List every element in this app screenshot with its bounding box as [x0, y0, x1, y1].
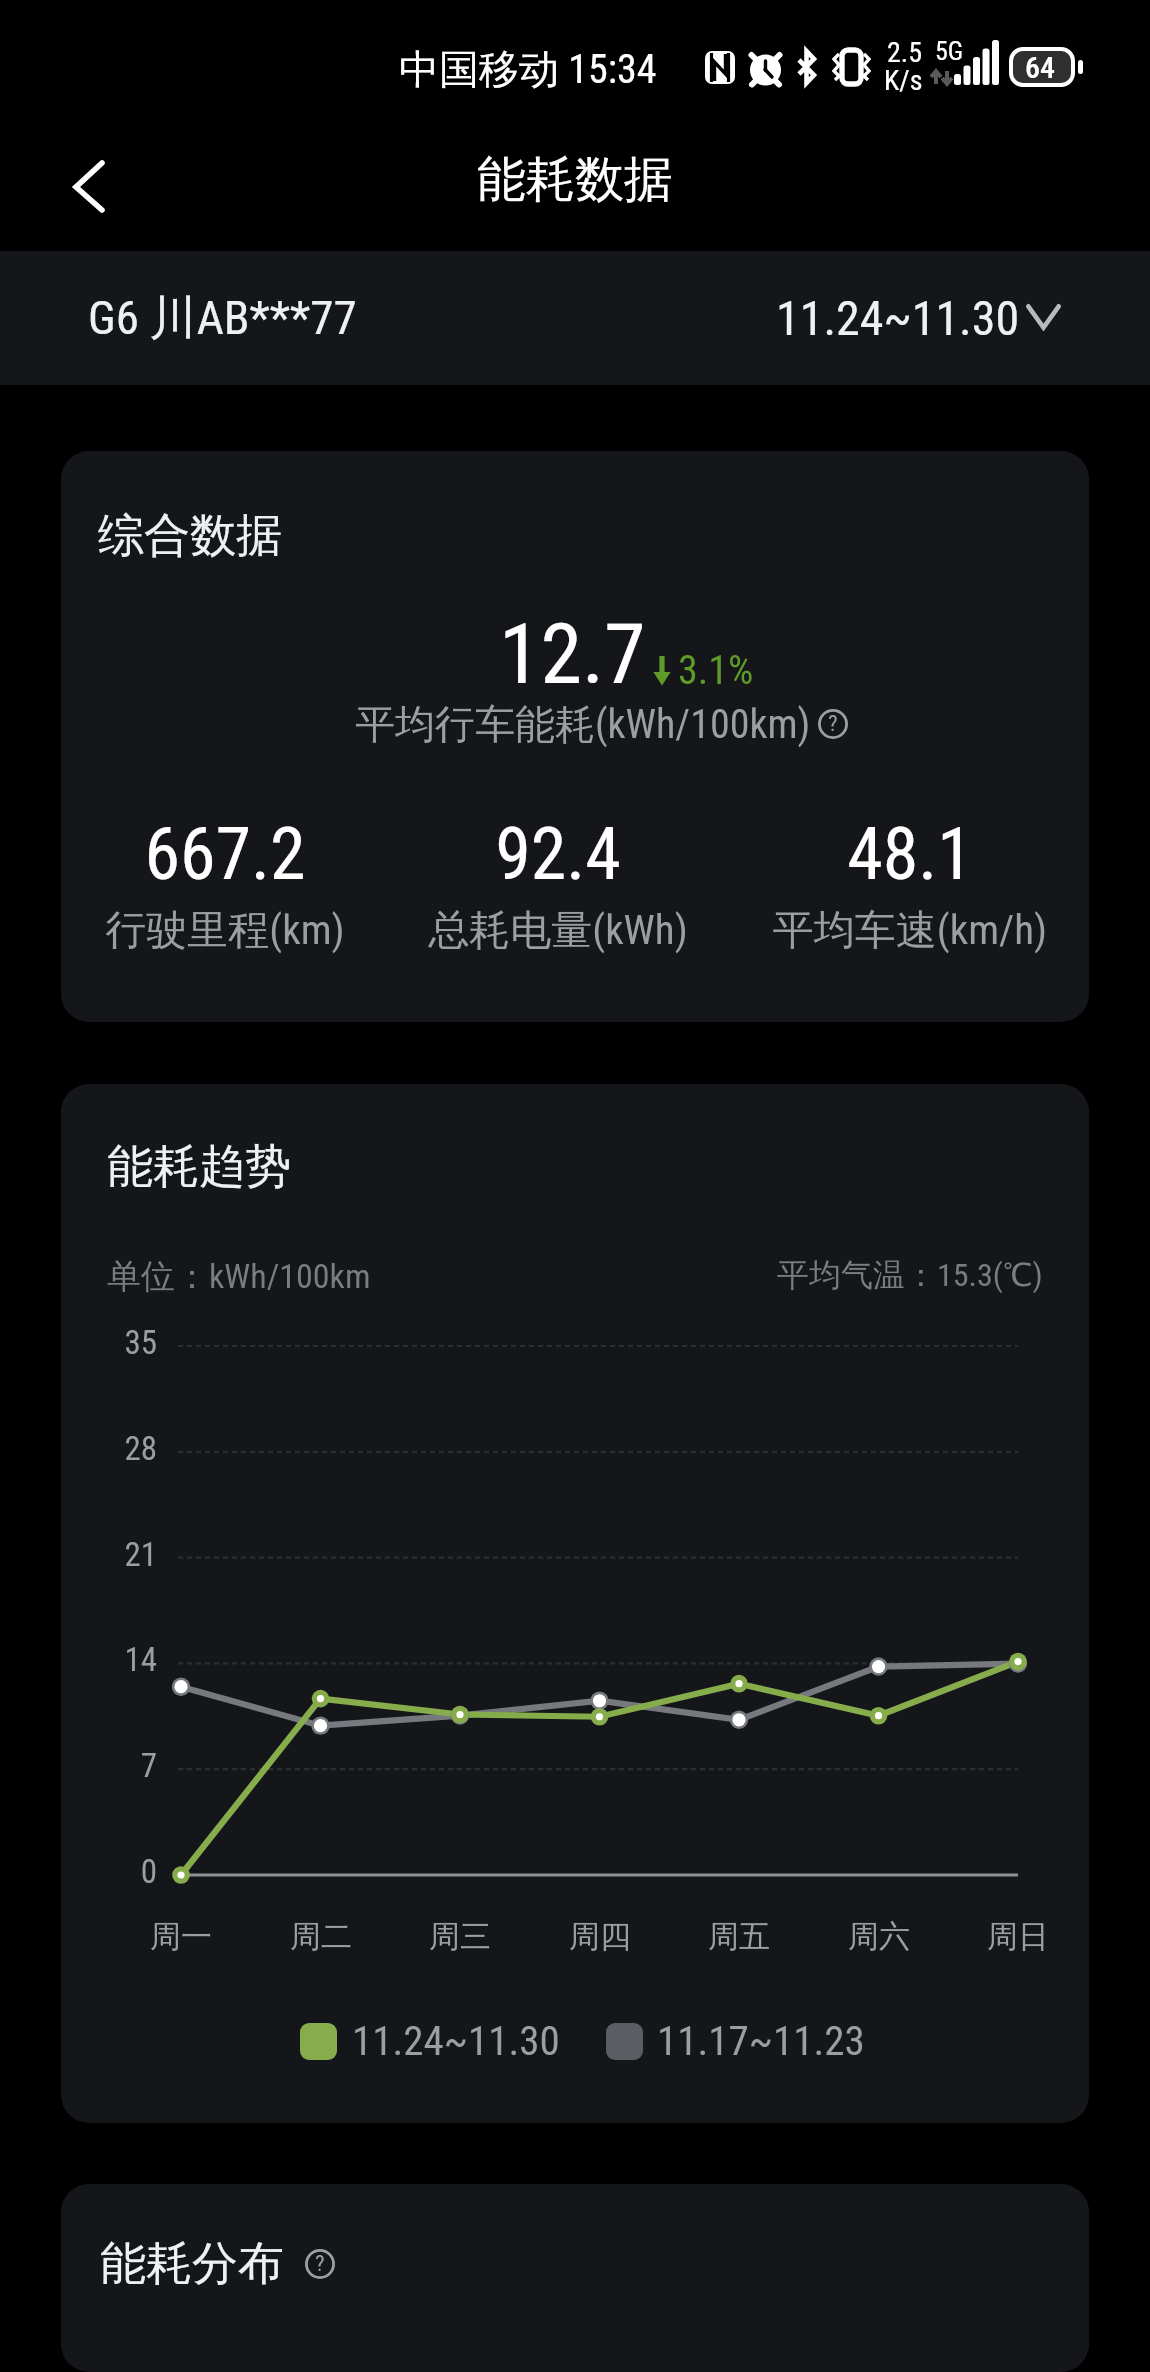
staticText: 2.5: [887, 36, 923, 69]
staticText: 14: [61, 1640, 157, 1679]
staticText: ?: [315, 2250, 325, 2277]
staticText: 周六: [799, 1917, 959, 1956]
staticText: 35: [61, 1323, 157, 1362]
staticText: 667.2: [61, 812, 405, 896]
staticText: 11.24~11.30: [776, 290, 1020, 346]
staticText: 5G: [935, 36, 964, 66]
staticText: 综合数据: [98, 507, 282, 565]
staticText: 周三: [380, 1917, 540, 1956]
staticText: 11.24~11.30: [352, 2017, 560, 2065]
button[interactable]: G6 川AB***77: [88, 289, 357, 348]
staticText: 能耗趋势: [107, 1138, 291, 1196]
staticText: 11.17~11.23: [657, 2017, 865, 2065]
button[interactable]: 48.1: [730, 812, 1089, 957]
staticText: 0: [61, 1852, 157, 1891]
staticText: 单位：kWh/100km: [107, 1255, 371, 1298]
button[interactable]: Help: [818, 709, 848, 739]
button[interactable]: Select date range: [776, 290, 1061, 346]
staticText: 能耗数据: [477, 149, 673, 211]
staticText: 中国移动 15:34: [399, 44, 657, 94]
staticText: 12.7: [499, 605, 646, 703]
staticText: 平均行车能耗(kWh/100km): [355, 699, 811, 749]
staticText: 行驶里程(km): [61, 905, 405, 957]
staticText: ?: [828, 710, 838, 737]
staticText: 平均车速(km/h): [730, 905, 1089, 957]
button[interactable]: 92.4: [378, 812, 738, 957]
staticText: 3.1%: [678, 647, 754, 694]
staticText: 7: [61, 1746, 157, 1785]
staticText: 平均气温：15.3(℃): [777, 1255, 1043, 1295]
staticText: 28: [61, 1429, 157, 1468]
staticText: 92.4: [378, 812, 738, 896]
staticText: 周二: [241, 1917, 401, 1956]
button[interactable]: Help: [305, 2249, 335, 2279]
staticText: 总耗电量(kWh): [378, 905, 738, 957]
staticText: 周四: [520, 1917, 680, 1956]
staticText: 周日: [938, 1917, 1089, 1956]
staticText: 48.1: [730, 812, 1089, 896]
button[interactable]: 667.2: [61, 812, 405, 957]
staticText: 64: [1025, 50, 1055, 85]
staticText: 能耗分布: [100, 2235, 284, 2293]
staticText: G6 川AB***77: [88, 289, 357, 348]
staticText: 周一: [101, 1917, 261, 1956]
staticText: 21: [61, 1535, 157, 1574]
staticText: K/s: [884, 64, 923, 97]
staticText: 周五: [659, 1917, 819, 1956]
button[interactable]: Back: [46, 138, 132, 224]
